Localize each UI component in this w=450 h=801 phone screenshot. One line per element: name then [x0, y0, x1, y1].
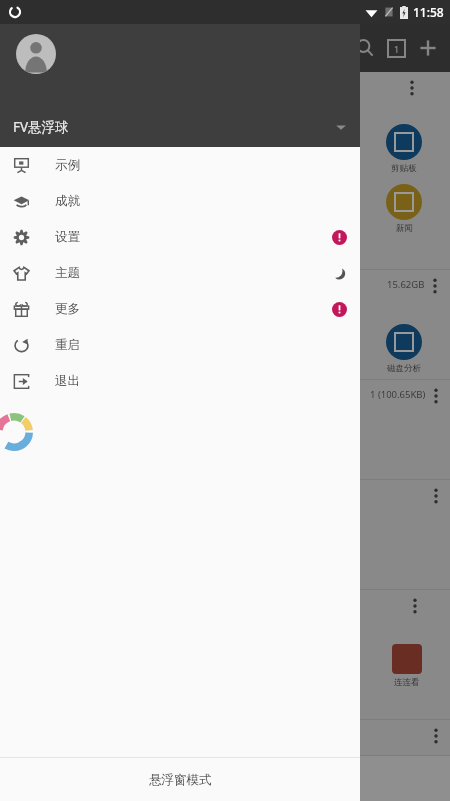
button[interactable]: More options — [433, 278, 437, 294]
button[interactable]: 连连看 — [392, 644, 422, 688]
staticText: 退出 — [55, 373, 80, 389]
staticText: 磁盘分析 — [387, 363, 421, 374]
button[interactable]: FV悬浮球 — [0, 107, 360, 147]
staticText: 11:58 — [413, 4, 444, 20]
staticText: 成就 — [55, 193, 80, 209]
button[interactable]: 悬浮窗模式 — [0, 758, 360, 801]
button[interactable]: Account avatar — [16, 34, 56, 74]
staticText: 设置 — [55, 229, 80, 245]
button[interactable]: 设置 — [0, 219, 360, 255]
button[interactable]: More options — [434, 388, 438, 404]
button[interactable]: 重启 — [0, 327, 360, 363]
staticText: 新闻 — [396, 223, 413, 234]
button[interactable]: More options — [410, 80, 414, 96]
button[interactable]: More options — [434, 728, 438, 744]
staticText: 1 — [394, 43, 400, 55]
button[interactable]: Tabs — [388, 40, 405, 57]
button[interactable]: More options — [434, 488, 438, 504]
button[interactable]: 更多 — [0, 291, 360, 327]
button[interactable]: 15.62GB — [0, 270, 450, 380]
staticText: 悬浮窗模式 — [149, 772, 212, 788]
staticText: FV悬浮球 — [13, 118, 69, 136]
button[interactable]: 1 (100.65KB) — [0, 380, 450, 480]
staticText: 更多 — [55, 301, 80, 317]
staticText: 15.62GB — [387, 278, 425, 291]
button[interactable]: 示例 — [0, 147, 360, 183]
button[interactable]: 成就 — [0, 183, 360, 219]
other: Syncing — [8, 5, 22, 19]
button[interactable]: More options — [413, 598, 417, 614]
button[interactable]: 主题 — [0, 255, 360, 291]
staticText: 1 (100.65KB) — [370, 388, 426, 401]
button[interactable]: Search — [355, 38, 375, 58]
button[interactable]: More options — [0, 590, 450, 720]
button[interactable]: More options — [0, 72, 450, 270]
button[interactable]: More options — [0, 480, 450, 590]
button[interactable]: 退出 — [0, 363, 360, 399]
button[interactable]: Add — [418, 38, 438, 58]
staticText: 主题 — [55, 265, 80, 281]
button[interactable]: 剪贴板 — [386, 124, 422, 174]
staticText: 示例 — [55, 157, 80, 173]
button[interactable]: 磁盘分析 — [386, 324, 422, 374]
staticText: 连连看 — [394, 677, 420, 688]
button[interactable]: Account avatar — [0, 24, 360, 147]
button[interactable]: More options — [0, 720, 450, 756]
other: Expand account list — [334, 120, 348, 134]
staticText: 剪贴板 — [391, 163, 417, 174]
staticText: 重启 — [55, 337, 80, 353]
button[interactable]: 新闻 — [386, 184, 422, 234]
